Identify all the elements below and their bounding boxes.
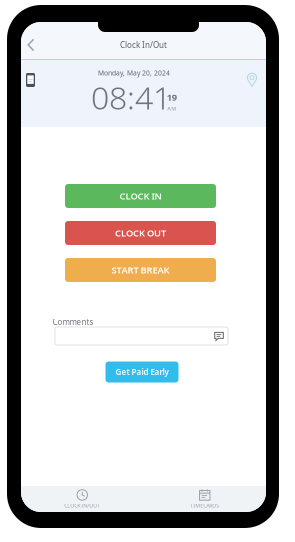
button[interactable]: CLOCK IN/OUT (21, 486, 143, 512)
button[interactable]: START BREAK (65, 258, 216, 282)
staticText: CLOCK IN (119, 190, 161, 202)
button[interactable]: CLOCK IN (65, 184, 216, 208)
staticText: 19 (167, 91, 177, 103)
button[interactable]: TIMECARDS (143, 486, 266, 512)
staticText: Monday, May 20, 2024 (98, 69, 170, 77)
staticText: 08:41 (91, 76, 171, 118)
staticText: CLOCK OUT (115, 227, 166, 239)
button[interactable]: Get Paid Early (105, 361, 178, 382)
staticText: CLOCK IN/OUT (64, 502, 100, 509)
button[interactable]: Back (18, 31, 44, 59)
staticText: AM (167, 105, 176, 112)
staticText: Clock In/Out (120, 40, 167, 50)
staticText: START BREAK (111, 264, 169, 276)
staticText: Comments (52, 317, 93, 327)
staticText: Get Paid Early (115, 367, 168, 377)
button[interactable]: CLOCK OUT (65, 221, 216, 245)
staticText: TIMECARDS (190, 502, 219, 509)
